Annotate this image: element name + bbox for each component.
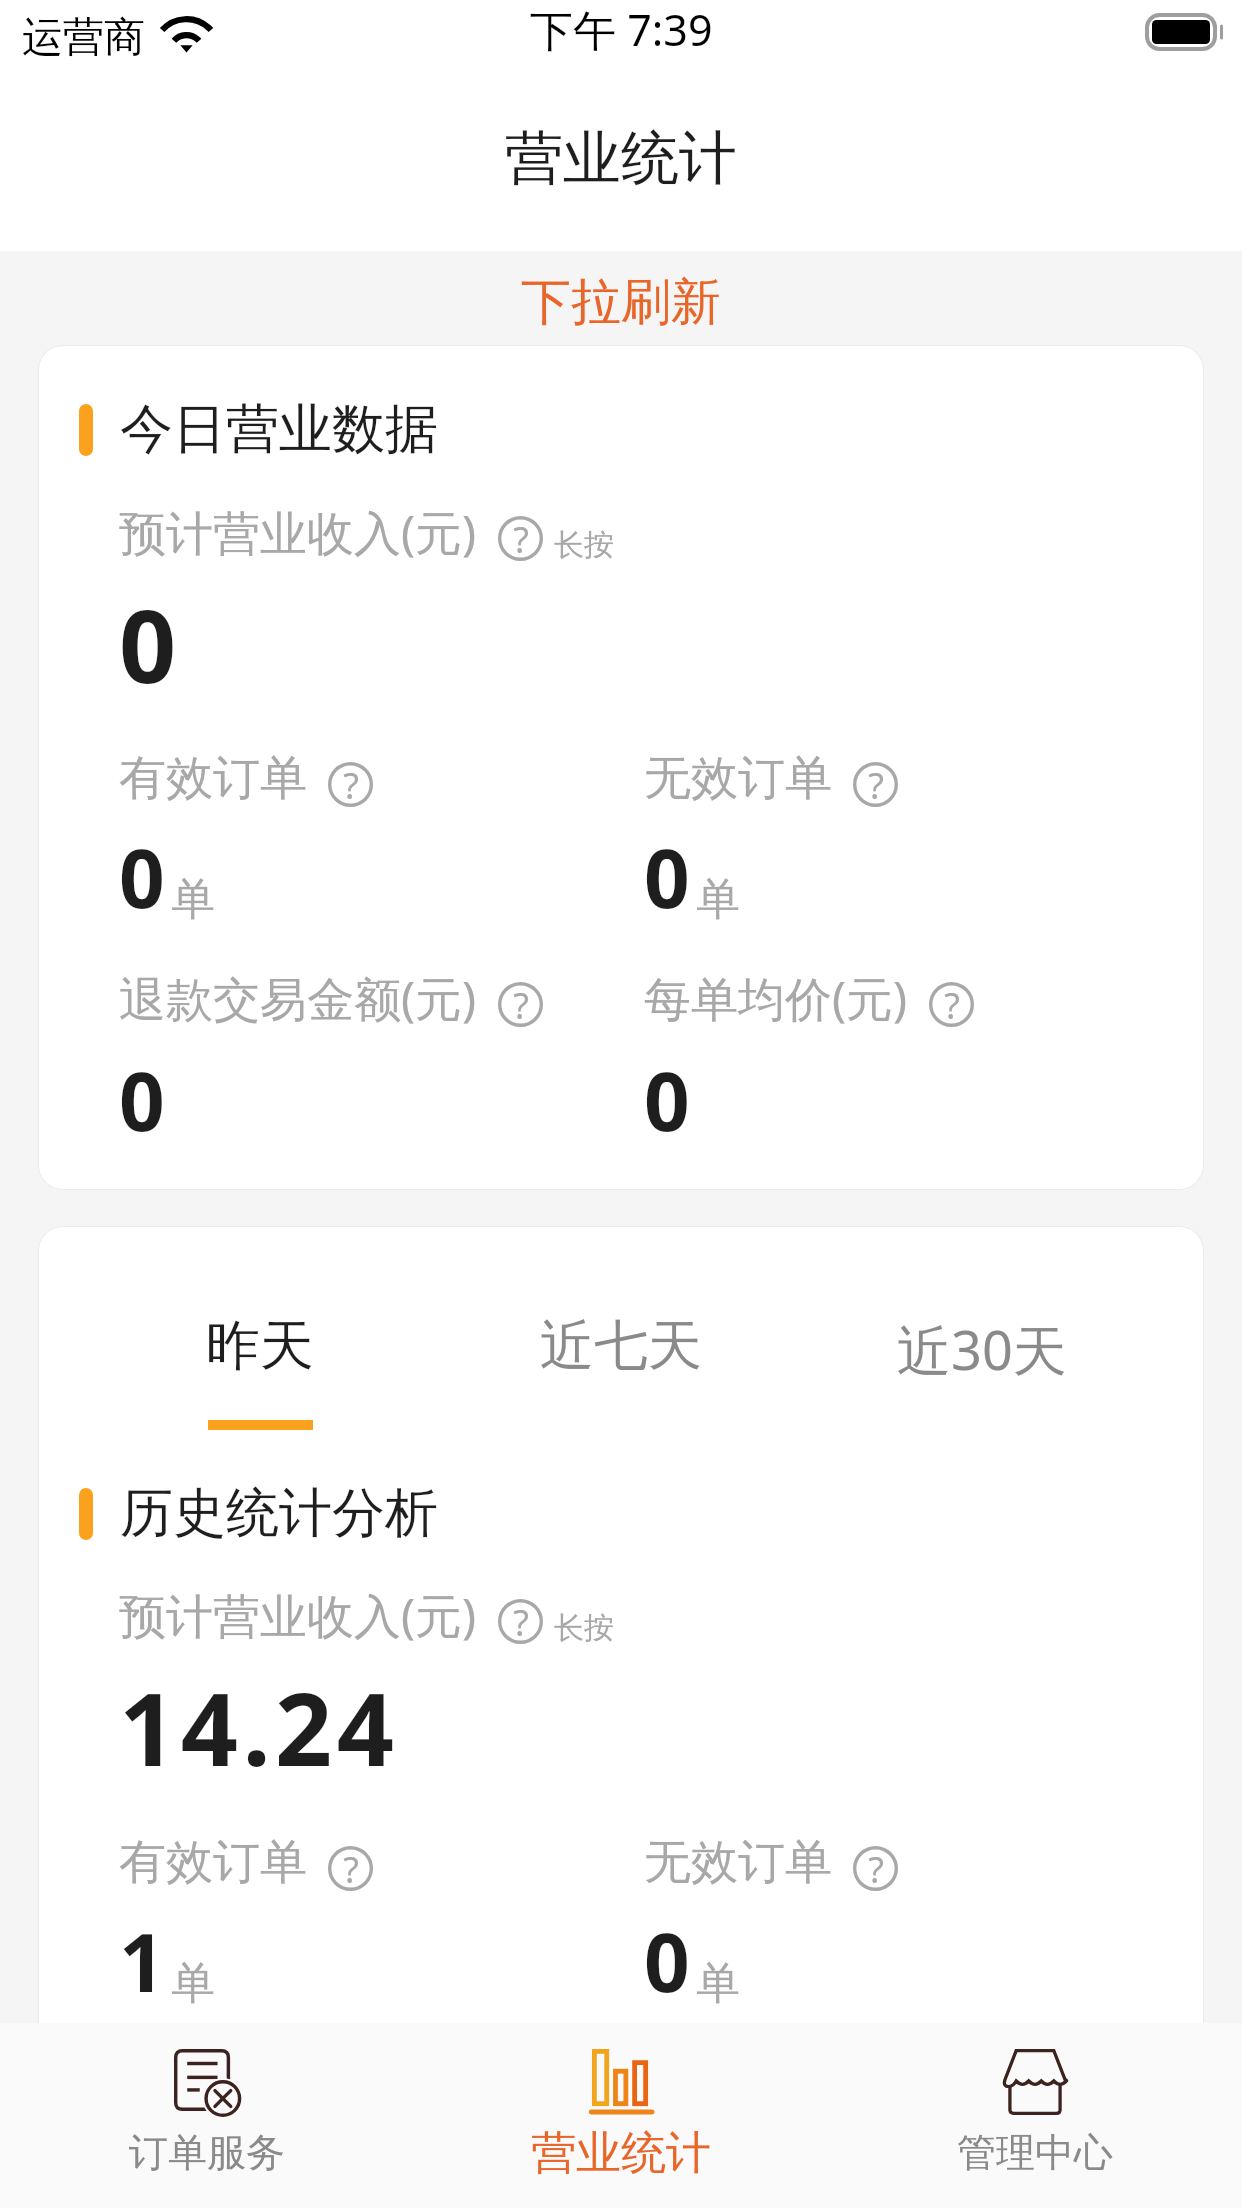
staticText: 0	[119, 1045, 169, 1154]
button[interactable]: 订单服务	[0, 2023, 414, 2208]
staticText: 0	[644, 1045, 694, 1154]
button[interactable]: 昨天	[80, 1312, 440, 1430]
staticText: 0	[119, 576, 181, 712]
staticText: 单	[696, 872, 740, 927]
button[interactable]: 帮助说明	[498, 982, 543, 1027]
button[interactable]: 营业统计	[414, 2023, 828, 2208]
staticText: 营业统计	[531, 2125, 711, 2182]
staticText: 0	[644, 822, 694, 931]
staticText: 0	[644, 1906, 694, 2015]
staticText: 预计营业收入(元)	[119, 1583, 477, 1647]
staticText: 预计营业收入(元)	[119, 500, 477, 564]
staticText: 无效订单	[644, 1833, 832, 1892]
staticText: 下午 7:39	[530, 0, 713, 59]
button[interactable]: 帮助说明	[853, 1846, 898, 1891]
staticText: 单	[696, 1956, 740, 2011]
staticText: ?	[868, 1845, 884, 1890]
button[interactable]: 帮助说明	[498, 516, 543, 561]
staticText: 历史统计分析	[120, 1480, 438, 1547]
staticText: 管理中心	[957, 2128, 1113, 2177]
button[interactable]: 近七天	[440, 1312, 801, 1430]
staticText: 营业统计	[505, 122, 737, 195]
button[interactable]: 帮助说明	[853, 762, 898, 807]
staticText: 近七天	[540, 1312, 702, 1380]
staticText: ?	[343, 1845, 359, 1890]
button[interactable]: 帮助说明	[498, 1599, 543, 1644]
staticText: 无效订单	[644, 749, 832, 808]
staticText: 下拉刷新	[521, 271, 721, 334]
staticText: 有效订单	[119, 1833, 307, 1892]
button[interactable]: 管理中心	[828, 2023, 1242, 2208]
staticText: 0	[119, 822, 169, 931]
staticText: 单	[171, 1956, 215, 2011]
button[interactable]: 帮助说明	[929, 982, 974, 1027]
staticText: 1	[119, 1906, 169, 2015]
staticText: ?	[513, 981, 529, 1026]
staticText: ?	[513, 1598, 529, 1643]
staticText: 订单服务	[129, 2128, 285, 2177]
staticText: 今日营业数据	[120, 396, 438, 463]
staticText: 运营商	[22, 12, 145, 64]
staticText: 14.24	[119, 1659, 399, 1795]
button[interactable]: 帮助说明	[328, 1846, 373, 1891]
staticText: 每单均价(元)	[644, 966, 908, 1030]
staticText: 退款交易金额(元)	[119, 966, 477, 1030]
button[interactable]: 帮助说明	[328, 762, 373, 807]
staticText: 近30天	[897, 1312, 1067, 1386]
staticText: 昨天	[206, 1312, 314, 1380]
button[interactable]: 近30天	[801, 1312, 1162, 1436]
staticText: 长按	[554, 526, 614, 564]
staticText: ?	[513, 515, 529, 560]
staticText: ?	[343, 761, 359, 806]
staticText: ?	[944, 981, 960, 1026]
staticText: 有效订单	[119, 749, 307, 808]
staticText: ?	[868, 761, 884, 806]
staticText: 单	[171, 872, 215, 927]
staticText: 长按	[554, 1609, 614, 1647]
